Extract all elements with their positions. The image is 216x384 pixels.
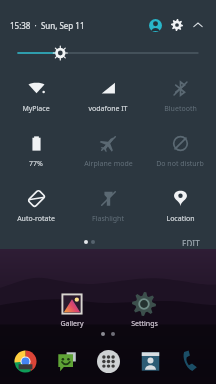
button[interactable]: User (144, 14, 166, 36)
button[interactable]: vodafone IT (72, 70, 144, 125)
button[interactable]: Phone (172, 342, 210, 380)
button[interactable]: 77% (0, 125, 72, 180)
button[interactable]: Airplane mode (72, 125, 144, 180)
button[interactable]: Apps (89, 342, 127, 380)
staticText: Auto-rotate (17, 214, 55, 224)
button[interactable]: Messaging (48, 342, 86, 380)
button[interactable]: EDIT (178, 235, 204, 249)
staticText: Gallery (60, 319, 84, 329)
button[interactable]: MyPlace (0, 70, 72, 125)
staticText: vodafone IT (88, 104, 128, 114)
staticText: Location (166, 214, 195, 224)
staticText: MyPlace (22, 104, 50, 114)
staticText: EDIT (182, 238, 200, 246)
button[interactable]: Location (144, 180, 216, 235)
staticText: Airplane mode (84, 159, 133, 169)
staticText: 15:38 · Sun, Sep 11 (10, 20, 85, 31)
staticText: Flashlight (92, 214, 124, 224)
button[interactable]: Gallery (36, 290, 108, 331)
staticText: Do not disturb (156, 159, 204, 169)
button[interactable]: Flashlight (72, 180, 144, 235)
button[interactable]: Settings (166, 14, 188, 36)
button[interactable]: Do not disturb (144, 125, 216, 180)
button[interactable]: Bluetooth (144, 70, 216, 125)
button[interactable]: Auto-rotate (0, 180, 72, 235)
staticText: Bluetooth (164, 104, 197, 114)
button[interactable]: Settings (108, 290, 180, 331)
staticText: 77% (29, 159, 43, 169)
button[interactable]: Brightness (18, 44, 198, 62)
button[interactable]: Chrome (6, 342, 44, 380)
button[interactable]: Contacts (131, 342, 169, 380)
staticText: Settings (131, 319, 158, 329)
button[interactable]: Collapse (188, 15, 208, 35)
